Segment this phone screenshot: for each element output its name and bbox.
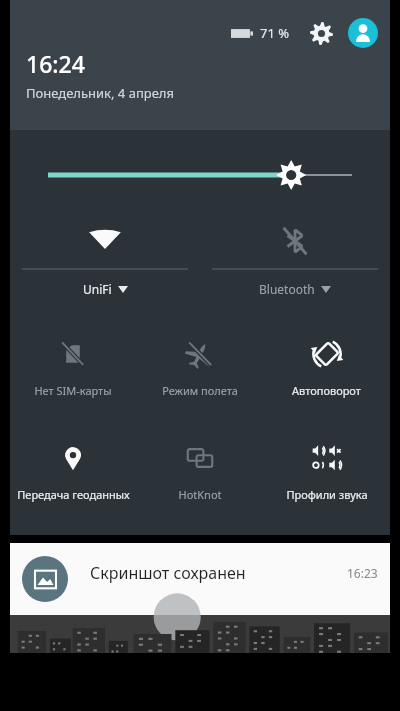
staticText: Нет SIM-карты: [34, 383, 112, 398]
button[interactable]: Передача геоданных: [10, 430, 136, 502]
button[interactable]: Нет SIM-карты: [10, 326, 136, 398]
staticText: UniFi: [83, 281, 112, 297]
button[interactable]: UniFi: [22, 205, 188, 297]
button[interactable]: Режим полета: [136, 326, 263, 398]
button[interactable]: Автоповорот: [263, 326, 390, 398]
staticText: Режим полета: [162, 383, 238, 398]
staticText: Передача геоданных: [17, 487, 130, 502]
staticText: Скриншот сохранен: [90, 562, 246, 584]
staticText: Понедельник, 4 апреля: [26, 84, 174, 102]
button[interactable]: Профили звука: [263, 430, 390, 502]
staticText: Bluetooth: [259, 281, 315, 297]
button[interactable]: User profile: [348, 18, 378, 48]
button[interactable]: Скриншот сохранен: [10, 543, 390, 615]
staticText: Автоповорот: [292, 383, 361, 398]
button[interactable]: Settings: [306, 18, 336, 48]
staticText: HotKnot: [178, 487, 222, 502]
staticText: 16:23: [347, 565, 378, 581]
button[interactable]: Brightness: [10, 130, 390, 205]
staticText: Профили звука: [286, 487, 368, 502]
staticText: 16:24: [26, 48, 85, 79]
button[interactable]: HotKnot: [136, 430, 263, 502]
staticText: 71 %: [260, 24, 290, 42]
button[interactable]: Bluetooth: [212, 205, 378, 297]
